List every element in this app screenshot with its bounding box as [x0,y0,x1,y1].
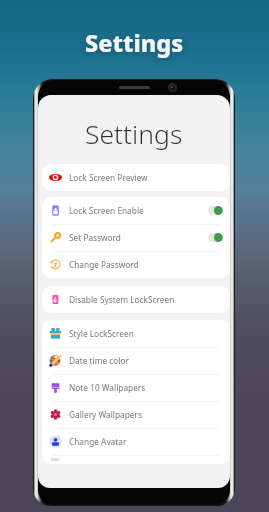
button[interactable]: Note 10 Wallpapers [42,374,230,401]
button[interactable]: Lock Screen Preview [42,164,230,191]
button[interactable]: Set Password [42,224,230,251]
staticText: Lock Screen Preview [69,172,148,183]
button[interactable]: Change Avatar [42,428,230,455]
button[interactable]: Disable System LockScreen [42,286,230,313]
staticText: Date time color [69,355,129,366]
button[interactable]: Date time color [42,347,230,374]
staticText: Style LockScreen [69,328,134,339]
staticText: Gallery Wallpapers [69,409,142,420]
button[interactable]: Toggle Set Password [208,233,223,242]
staticText: Note 10 Wallpapers [69,382,146,393]
button[interactable] [42,455,230,464]
staticText: Settings [85,27,184,59]
button[interactable]: Style LockScreen [42,320,230,347]
button[interactable]: Change Password [42,251,230,278]
staticText: Disable System LockScreen [69,294,175,305]
button[interactable]: Toggle Lock Screen Enable [208,206,223,215]
staticText: Lock Screen Enable [69,205,144,216]
staticText: Change Password [69,259,139,270]
button[interactable]: Gallery Wallpapers [42,401,230,428]
staticText: Change Avatar [69,436,127,447]
button[interactable]: Lock Screen Enable [42,197,230,224]
staticText: Settings [85,116,183,152]
staticText: Set Password [69,232,121,243]
